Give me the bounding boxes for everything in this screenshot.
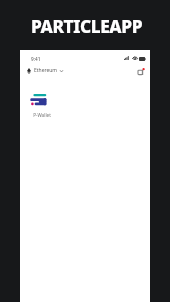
staticText: PARTICLEAPP	[31, 15, 143, 39]
button[interactable]: Ethereum	[27, 67, 63, 74]
staticText: P-Wallet	[33, 112, 51, 118]
button[interactable]: P-Wallet	[28, 91, 50, 121]
button[interactable]: Notifications	[136, 67, 146, 77]
staticText: 9:41	[31, 56, 41, 62]
staticText: Ethereum	[34, 67, 58, 74]
